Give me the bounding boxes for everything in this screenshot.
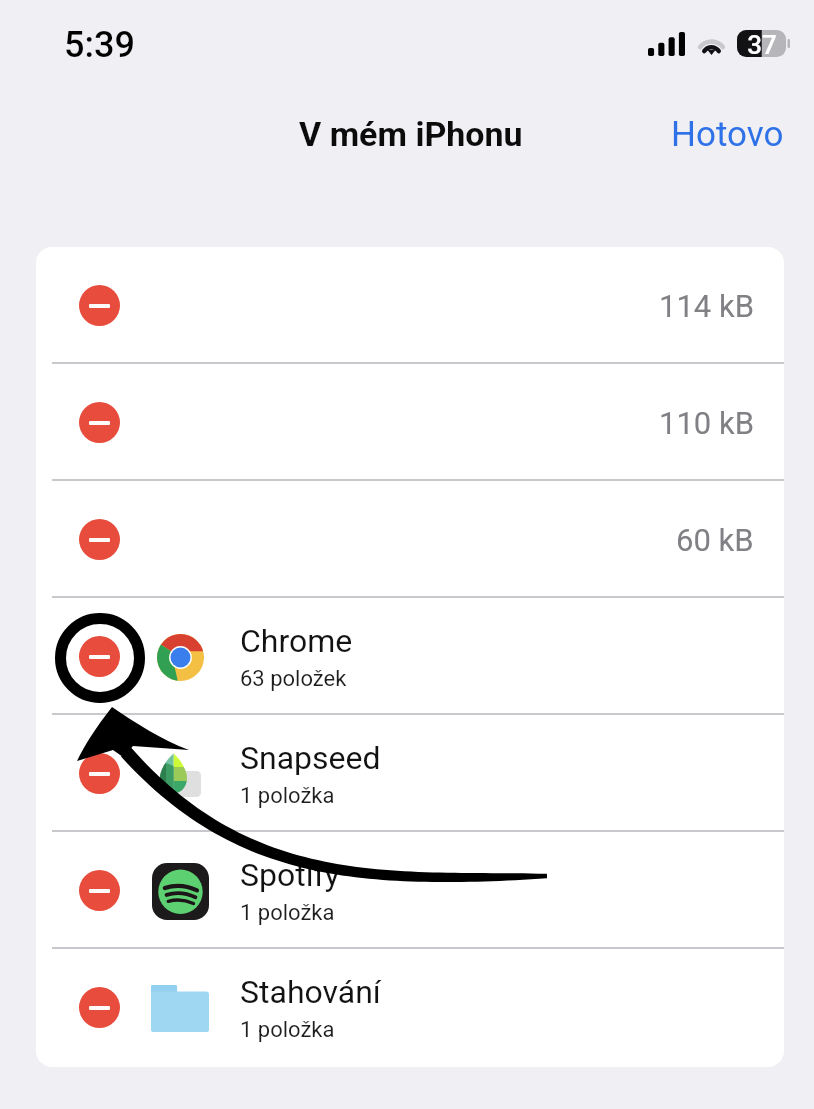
staticText: Spotify (240, 856, 340, 894)
button[interactable]: Remove item (36, 364, 784, 481)
staticText: Snapseed (240, 739, 381, 777)
button[interactable]: Remove item (79, 987, 120, 1028)
button[interactable]: Remove item (79, 285, 120, 326)
button[interactable]: Remove item (36, 949, 784, 1066)
button[interactable]: Remove item (36, 598, 784, 715)
button[interactable]: Remove item (36, 481, 784, 598)
staticText: 1 položka (240, 783, 335, 809)
button[interactable]: Remove item (79, 402, 120, 443)
button[interactable]: Remove item (79, 753, 120, 794)
button[interactable]: Remove item (79, 636, 120, 677)
button[interactable]: Remove item (36, 832, 784, 949)
staticText: V mém iPhonu (299, 114, 523, 154)
staticText: 1 položka (240, 900, 335, 926)
staticText: 37 (747, 30, 777, 57)
staticText: 1 položka (240, 1017, 335, 1043)
staticText: Stahování (240, 973, 381, 1011)
staticText: Chrome (240, 622, 353, 660)
staticText: 63 položek (240, 666, 347, 692)
staticText: 60 kB (676, 522, 754, 558)
staticText: 5:39 (64, 24, 135, 66)
button[interactable]: Remove item (36, 715, 784, 832)
button[interactable]: Remove item (79, 870, 120, 911)
button[interactable]: Remove item (79, 519, 120, 560)
button[interactable]: Remove item (36, 247, 784, 364)
staticText: 114 kB (659, 288, 754, 324)
staticText: 110 kB (659, 405, 754, 441)
button[interactable]: Hotovo (671, 114, 784, 155)
staticText: Hotovo (671, 114, 784, 155)
